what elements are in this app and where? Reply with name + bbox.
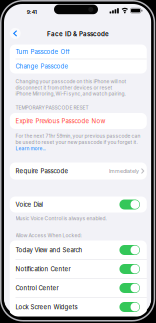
staticText: Change Passcode bbox=[15, 63, 68, 70]
staticText: Face ID & Passcode bbox=[47, 30, 109, 38]
button[interactable]: Lock Screen Widgets bbox=[119, 302, 140, 312]
button[interactable]: Learn more... bbox=[15, 145, 155, 152]
staticText: 9:41 bbox=[27, 9, 37, 15]
staticText: Learn more... bbox=[15, 145, 45, 151]
button[interactable]: Notification Center bbox=[119, 264, 140, 274]
button[interactable]: Require Passcode bbox=[10, 162, 147, 179]
staticText: Expire Previous Passcode Now bbox=[15, 117, 105, 125]
staticText: Require Passcode bbox=[15, 167, 68, 175]
button[interactable]: Turn Passcode Off bbox=[10, 44, 147, 59]
button[interactable]: Today View and Search bbox=[119, 245, 140, 255]
staticText: iPhone Mirroring, Wi-Fi sync, and watch … bbox=[15, 91, 125, 97]
staticText: Lock Screen Widgets bbox=[15, 303, 77, 311]
staticText: Notification Center bbox=[15, 265, 70, 273]
staticText: Immediately bbox=[109, 168, 139, 174]
staticText: Allow Access When Locked: bbox=[15, 232, 81, 238]
staticText: Today View and Search bbox=[15, 246, 82, 254]
staticText: For the next 71hr 59min, your previous p… bbox=[15, 133, 140, 139]
staticText: TEMPORARY PASSCODE RESET bbox=[15, 105, 88, 111]
staticText: Voice Dial bbox=[15, 201, 42, 208]
staticText: be used to reset your new passcode if yo… bbox=[15, 139, 137, 145]
staticText: Control Center bbox=[15, 284, 58, 292]
button[interactable]: Change Passcode bbox=[10, 59, 147, 73]
button[interactable]: Back bbox=[9, 27, 21, 39]
button[interactable]: Expire Previous Passcode Now bbox=[10, 113, 147, 129]
staticText: disconnect it from other devices or rese… bbox=[15, 85, 112, 91]
button[interactable]: Voice Dial bbox=[119, 199, 140, 209]
staticText: Changing your passcode on this iPhone wi… bbox=[15, 78, 126, 84]
staticText: Turn Passcode Off bbox=[15, 48, 69, 55]
button[interactable]: Control Center bbox=[119, 283, 140, 293]
staticText: Music Voice Control is always enabled. bbox=[15, 215, 106, 221]
